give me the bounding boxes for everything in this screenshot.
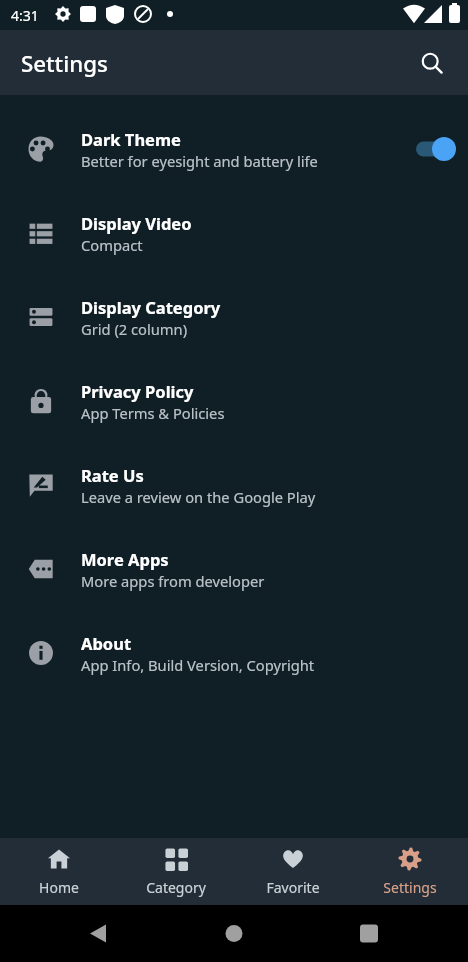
button[interactable]: Search [412, 43, 452, 83]
staticText: Grid (2 column) [81, 319, 188, 339]
staticText: More Apps [81, 548, 169, 570]
staticText: Privacy Policy [81, 380, 194, 402]
button[interactable]: Rate Us [0, 443, 468, 527]
staticText: Favorite [266, 878, 320, 897]
staticText: 4:31 [11, 6, 39, 25]
button[interactable]: Settings [351, 838, 468, 905]
staticText: Leave a review on the Google Play [81, 487, 316, 507]
staticText: App Info, Build Version, Copyright [81, 655, 315, 675]
button[interactable]: Privacy Policy [0, 359, 468, 443]
staticText: Category [146, 878, 206, 897]
button[interactable]: Display Category [0, 275, 468, 359]
staticText: More apps from developer [81, 571, 265, 591]
staticText: Dark Theme [81, 128, 181, 150]
button[interactable]: Home [0, 838, 117, 905]
staticText: Display Category [81, 296, 221, 318]
button[interactable]: Favorite [234, 838, 351, 905]
staticText: Display Video [81, 212, 192, 234]
staticText: Settings [21, 48, 108, 78]
button[interactable]: About [0, 611, 468, 695]
staticText: Compact [81, 235, 143, 255]
staticText: Settings [383, 878, 437, 897]
button[interactable]: More Apps [0, 527, 468, 611]
staticText: Better for eyesight and battery life [81, 151, 318, 171]
staticText: App Terms & Policies [81, 403, 225, 423]
button[interactable]: Dark Theme [0, 107, 468, 191]
staticText: Home [39, 878, 79, 897]
staticText: Rate Us [81, 464, 144, 486]
button[interactable]: Category [117, 838, 234, 905]
staticText: About [81, 632, 132, 654]
button[interactable]: Dark theme toggle [404, 107, 468, 191]
button[interactable]: Display Video [0, 191, 468, 275]
